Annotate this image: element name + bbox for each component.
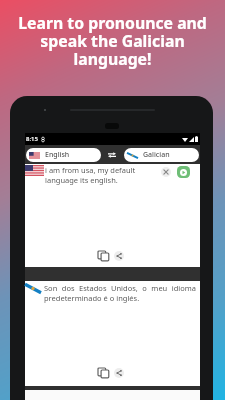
button[interactable]: English [26, 148, 101, 162]
button[interactable]: Clear [159, 165, 172, 178]
staticText: i am from usa, my default language its e… [45, 165, 140, 185]
staticText: Son dos Estados Unidos, o meu idioma pre… [44, 283, 196, 303]
button[interactable]: Galician [124, 148, 199, 162]
staticText: Learn to pronounce and speak the Galicia… [12, 12, 213, 70]
button[interactable]: Play [177, 166, 190, 178]
button[interactable]: Share [112, 249, 125, 262]
button[interactable]: Share [112, 366, 125, 379]
staticText: Galician [143, 150, 170, 160]
staticText: English [45, 150, 70, 160]
button[interactable]: Copy [97, 249, 110, 262]
button[interactable]: Copy [97, 366, 110, 379]
button[interactable]: Swap languages [101, 148, 123, 162]
staticText: 8:15 [26, 135, 38, 143]
